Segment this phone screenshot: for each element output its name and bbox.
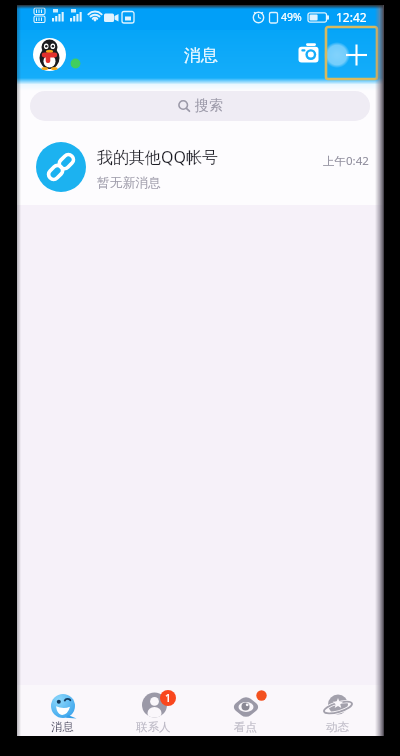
button[interactable]: 消息 [17, 686, 108, 736]
button[interactable]: 看点 [199, 686, 291, 736]
staticText: 看点 [234, 720, 257, 734]
button[interactable]: 我的其他QQ帐号 [17, 133, 383, 200]
button[interactable]: 联系人 [108, 686, 199, 736]
staticText: 1 [165, 691, 172, 705]
staticText: 联系人 [136, 720, 171, 734]
staticText: 暂无新消息 [97, 175, 161, 191]
button[interactable] [33, 38, 66, 71]
button[interactable] [328, 29, 376, 77]
staticText: 12:42 [336, 9, 367, 25]
button[interactable]: 动态 [291, 686, 383, 736]
button[interactable]: 搜索 [30, 91, 370, 121]
staticText: 消息 [51, 720, 74, 734]
staticText: 上午0:42 [323, 153, 369, 169]
button[interactable] [293, 40, 325, 70]
staticText: 我的其他QQ帐号 [97, 146, 218, 168]
staticText: 动态 [326, 720, 349, 734]
staticText: 消息 [184, 45, 218, 66]
staticText: 49% [281, 10, 302, 24]
staticText: 搜索 [195, 97, 223, 115]
